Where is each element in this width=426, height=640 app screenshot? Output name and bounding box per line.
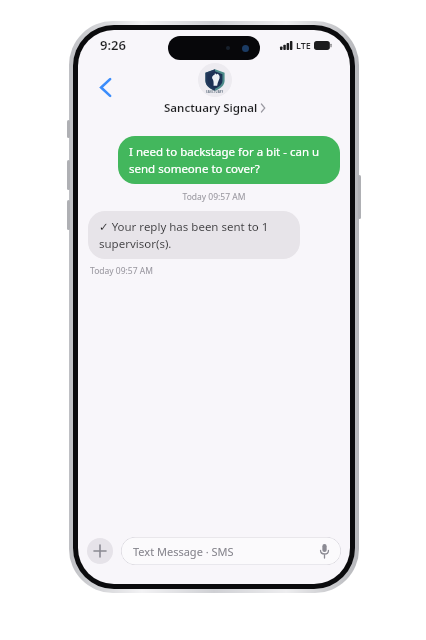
button[interactable]: SANCTUARY (164, 60, 265, 116)
staticText: Text Message · SMS (133, 544, 234, 559)
button[interactable]: ✓ Your reply has been sent to 1 supervis… (88, 211, 300, 259)
staticText: 9:26 (100, 36, 126, 54)
staticText: ✓ Your reply has been sent to 1 supervis… (99, 219, 289, 251)
button[interactable]: Text Message · SMS (121, 537, 341, 565)
staticText: I need to backstage for a bit - can u se… (129, 144, 329, 176)
staticText: Sanctuary Signal (164, 100, 258, 116)
button[interactable]: Back (88, 70, 122, 104)
button[interactable]: Add attachment (87, 538, 113, 564)
staticText: SANCTUARY (206, 90, 224, 94)
staticText: LTE (296, 39, 311, 51)
button[interactable]: I need to backstage for a bit - can u se… (118, 136, 340, 184)
button[interactable]: Voice message (315, 542, 333, 560)
staticText: Today 09:57 AM (90, 265, 350, 277)
staticText: Today 09:57 AM (78, 191, 350, 203)
